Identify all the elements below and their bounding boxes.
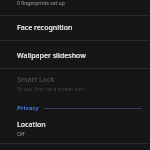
staticText: Wallpaper slideshow (17, 51, 86, 61)
button[interactable]: 0 fingerprints set up (0, 0, 150, 11)
button[interactable]: Face recognition (0, 18, 150, 40)
staticText: Off (17, 131, 25, 138)
staticText: To use, first set a screen lock (17, 86, 84, 93)
staticText: Privacy (17, 104, 39, 112)
staticText: Face recognition (17, 23, 73, 33)
staticText: Location (17, 120, 46, 130)
button[interactable]: Location (0, 117, 150, 143)
staticText: Smart Lock (17, 75, 55, 85)
button[interactable]: Wallpaper slideshow (0, 45, 150, 68)
staticText: 0 fingerprints set up (17, 0, 65, 7)
button[interactable]: Smart Lock (0, 71, 150, 98)
